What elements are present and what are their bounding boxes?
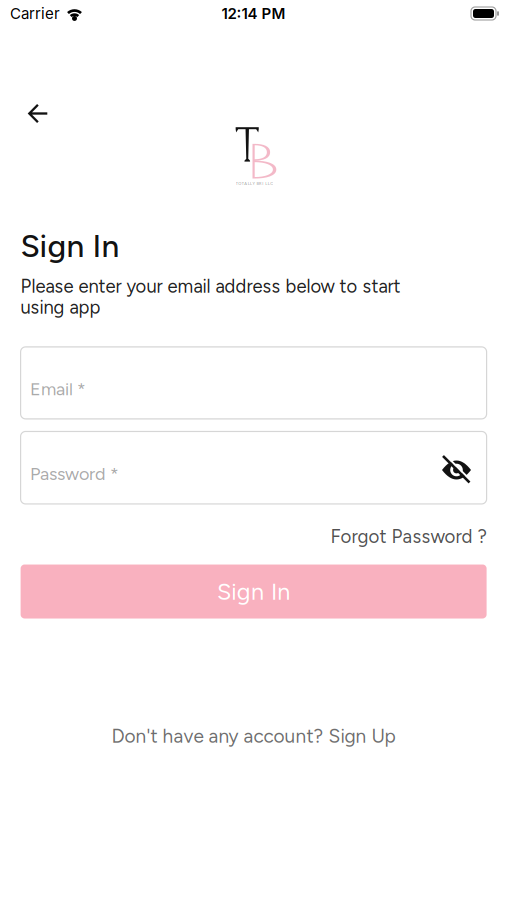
- staticText: Sign In: [217, 577, 290, 605]
- staticText: TOTALLY BRI LLC: [236, 181, 273, 186]
- button[interactable]: Password: [21, 431, 487, 504]
- button[interactable]: Show password: [434, 448, 478, 492]
- button[interactable]: Sign In: [21, 564, 487, 618]
- staticText: Carrier: [10, 4, 60, 23]
- button[interactable]: Forgot Password ?: [331, 525, 487, 548]
- button[interactable]: Back: [16, 91, 60, 135]
- button[interactable]: Don't have any account? Sign Up: [111, 725, 395, 747]
- staticText: Email *: [30, 378, 86, 400]
- staticText: Please enter your email address below to…: [21, 275, 401, 318]
- staticText: Don't have any account? Sign Up: [111, 725, 395, 747]
- staticText: Forgot Password ?: [331, 525, 487, 548]
- staticText: Password *: [30, 463, 119, 484]
- staticText: Sign In: [21, 227, 120, 265]
- staticText: 12:14 PM: [221, 4, 285, 23]
- button[interactable]: Email: [21, 347, 487, 419]
